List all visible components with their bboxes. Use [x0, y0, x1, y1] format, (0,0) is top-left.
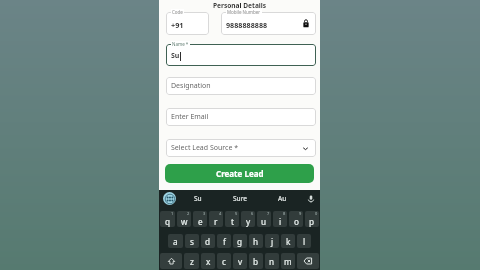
staticText: j	[271, 236, 274, 247]
staticText: Au	[278, 194, 287, 203]
button[interactable]: Sure	[219, 190, 261, 207]
button[interactable]: c	[217, 253, 231, 269]
button[interactable]: Shift	[160, 253, 182, 269]
staticText: 3	[203, 211, 206, 216]
button[interactable]: Create Lead	[165, 164, 314, 183]
staticText: Sure	[233, 194, 248, 203]
staticText: y	[246, 216, 251, 227]
button[interactable]: a	[168, 234, 183, 248]
button[interactable]: x	[201, 253, 215, 269]
staticText: 0	[315, 211, 318, 216]
staticText: 7	[267, 211, 270, 216]
staticText: b	[253, 256, 259, 267]
button[interactable]: 0	[305, 211, 319, 227]
staticText: Create Lead	[216, 168, 264, 179]
staticText: 1	[171, 211, 174, 216]
button[interactable]: d	[201, 234, 215, 248]
button[interactable]	[166, 77, 316, 95]
staticText: u	[261, 216, 267, 227]
staticText: 2	[187, 211, 190, 216]
staticText: 9	[299, 211, 302, 216]
button[interactable]: 4	[209, 211, 223, 227]
button[interactable]: Keyboard settings	[163, 192, 176, 205]
staticText: +91	[171, 20, 184, 30]
button[interactable]: Voice input	[305, 193, 317, 205]
staticText: c	[222, 256, 226, 267]
staticText: 8	[283, 211, 286, 216]
button[interactable]: s	[185, 234, 199, 248]
staticText: g	[237, 236, 243, 247]
button[interactable]	[166, 139, 316, 157]
staticText: Mobile Number	[227, 9, 261, 15]
staticText: d	[205, 236, 211, 247]
button[interactable]: Su	[177, 190, 219, 207]
staticText: l	[303, 236, 306, 247]
staticText: i	[279, 216, 282, 227]
staticText: e	[198, 216, 203, 227]
staticText: p	[309, 216, 315, 227]
staticText: w	[181, 216, 188, 227]
staticText: f	[223, 236, 226, 247]
staticText: o	[294, 216, 299, 227]
staticText: Code	[172, 9, 183, 15]
button[interactable]: k	[281, 234, 295, 248]
button[interactable]: 8	[273, 211, 287, 227]
staticText: z	[190, 256, 194, 267]
button[interactable]: m	[281, 253, 295, 269]
staticText: x	[206, 256, 211, 267]
button[interactable]: v	[233, 253, 247, 269]
button[interactable]: 5	[225, 211, 239, 227]
staticText: Su	[194, 194, 202, 203]
button[interactable]	[166, 108, 316, 126]
button[interactable]: g	[233, 234, 247, 248]
button[interactable]	[166, 44, 316, 66]
button[interactable]: Backspace	[297, 253, 319, 269]
button[interactable]: Au	[261, 190, 303, 207]
button[interactable]: n	[265, 253, 279, 269]
staticText: Select Lead Source *	[171, 143, 239, 153]
staticText: h	[253, 236, 259, 247]
button[interactable]: h	[249, 234, 263, 248]
button[interactable]: b	[249, 253, 263, 269]
button[interactable]: 1	[160, 211, 175, 227]
staticText: 4	[219, 211, 222, 216]
staticText: Enter Email	[171, 112, 209, 122]
staticText: t	[231, 216, 234, 227]
staticText: a	[173, 236, 178, 247]
staticText: r	[214, 216, 218, 227]
staticText: k	[286, 236, 291, 247]
staticText: 9888888888	[226, 20, 268, 30]
other: Locked	[303, 19, 309, 28]
button[interactable]: 7	[257, 211, 271, 227]
staticText: 6	[251, 211, 254, 216]
button[interactable]: 9	[289, 211, 303, 227]
button[interactable]: 2	[177, 211, 191, 227]
staticText: Personal Details	[159, 1, 320, 10]
staticText: q	[165, 216, 171, 227]
staticText: Su	[171, 51, 180, 61]
staticText: Name *	[172, 41, 189, 47]
button[interactable]: 6	[241, 211, 255, 227]
button[interactable]: z	[184, 253, 199, 269]
staticText: n	[269, 256, 275, 267]
button[interactable]	[221, 12, 316, 35]
staticText: m	[284, 256, 292, 267]
button[interactable]: f	[217, 234, 231, 248]
button[interactable]: j	[265, 234, 279, 248]
button[interactable]: l	[297, 234, 311, 248]
button[interactable]	[166, 12, 209, 35]
staticText: Designation	[171, 81, 211, 91]
staticText: v	[238, 256, 243, 267]
staticText: 5	[235, 211, 238, 216]
button[interactable]: 3	[193, 211, 207, 227]
staticText: s	[190, 236, 194, 247]
